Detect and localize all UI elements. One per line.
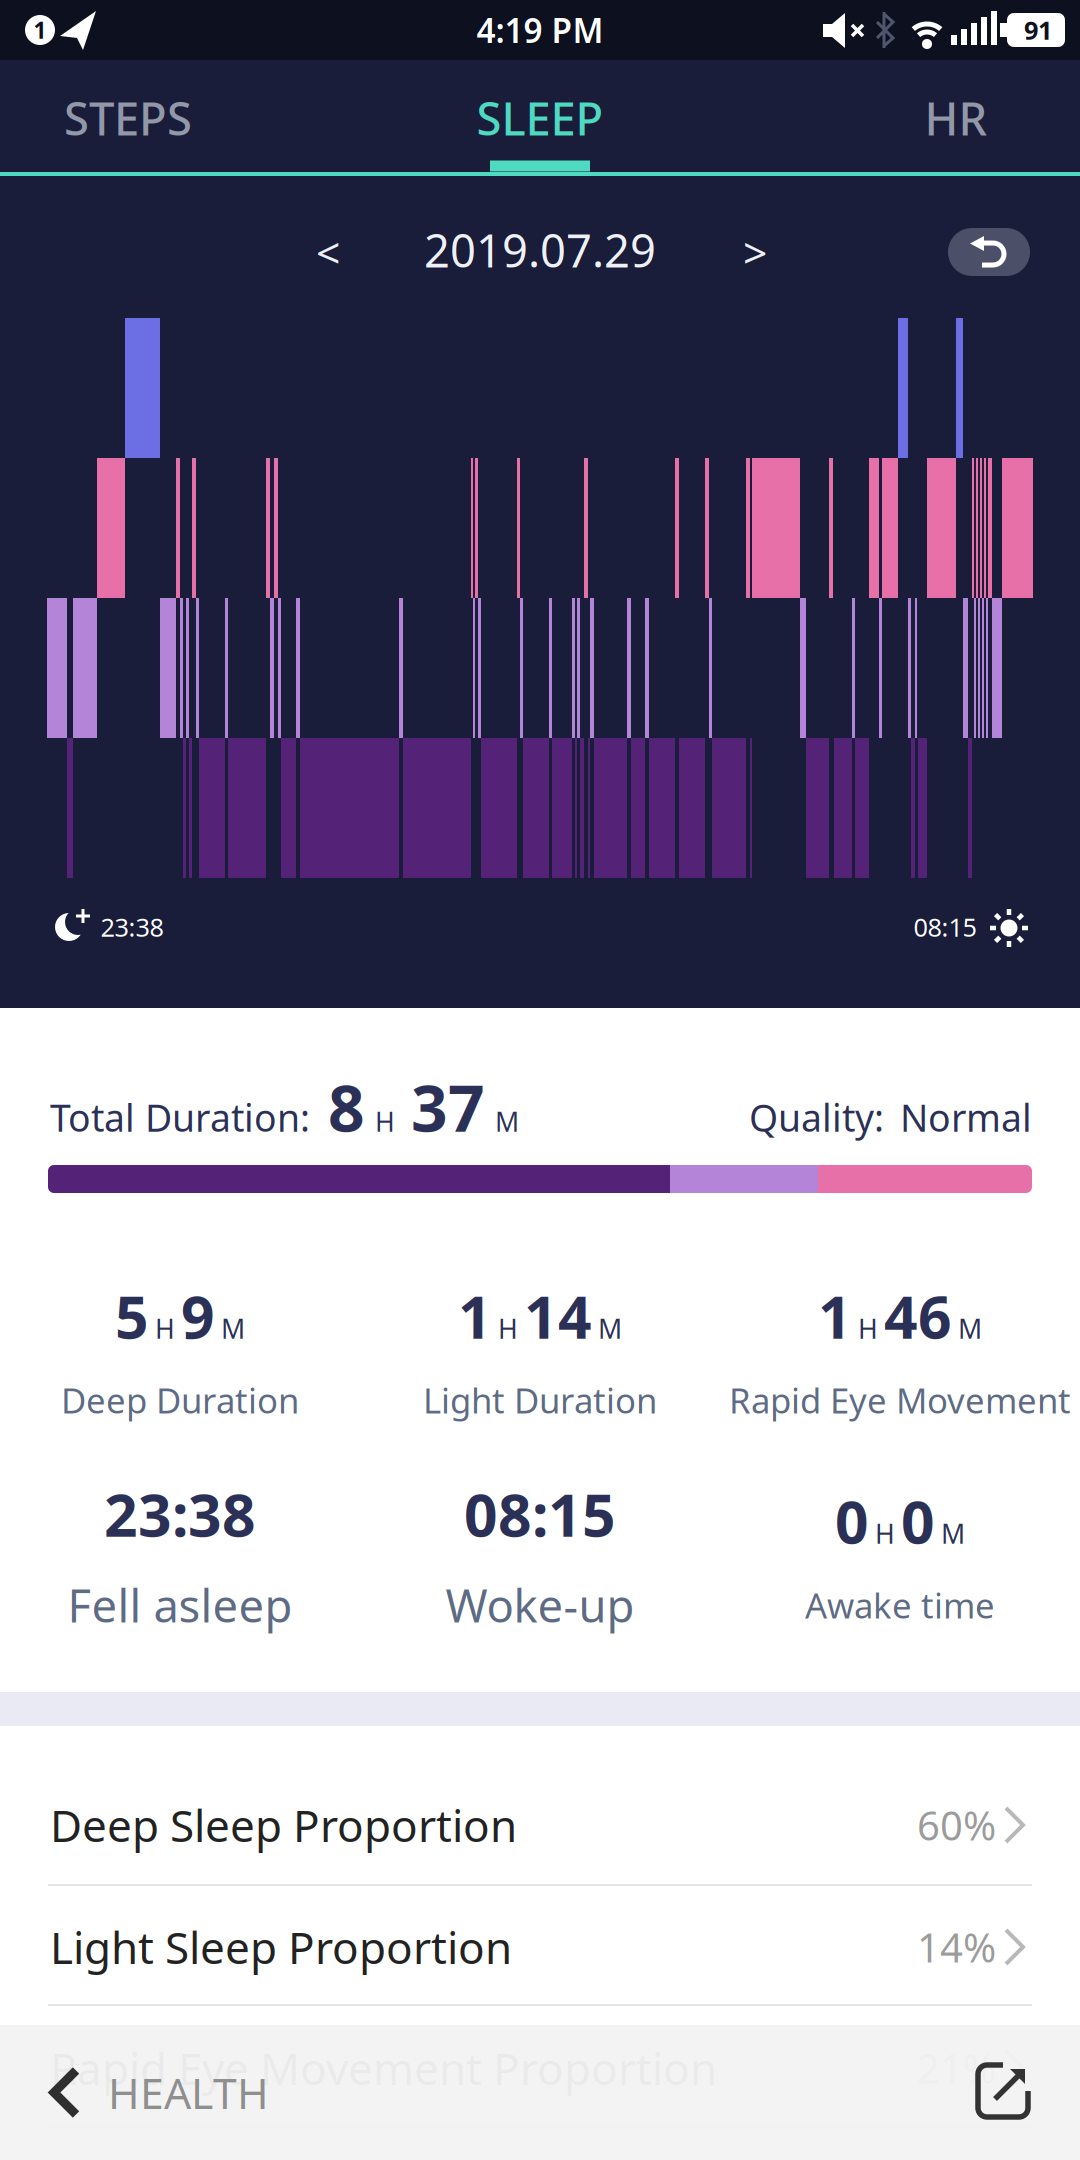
staticText: HR bbox=[924, 88, 987, 148]
staticText: 5 bbox=[115, 1277, 149, 1355]
staticText: Deep Duration bbox=[61, 1377, 299, 1423]
button[interactable]: Back to Health bbox=[0, 2025, 269, 2160]
staticText: Rapid Eye Movement Proportion bbox=[50, 2039, 717, 2097]
staticText: STEPS bbox=[64, 88, 192, 148]
staticText: 9 bbox=[181, 1277, 215, 1355]
staticText: Light Duration bbox=[423, 1377, 657, 1423]
staticText: H bbox=[858, 1311, 878, 1346]
staticText: 8 bbox=[328, 1064, 365, 1149]
staticText: 23:38 bbox=[104, 1475, 256, 1553]
staticText: 08:15 bbox=[913, 910, 976, 944]
staticText: H bbox=[875, 1516, 895, 1551]
staticText: M bbox=[958, 1311, 982, 1346]
staticText: Normal bbox=[900, 1093, 1032, 1142]
staticText: 46 bbox=[884, 1277, 952, 1355]
button[interactable]: SLEEP bbox=[430, 60, 650, 176]
staticText: < bbox=[316, 224, 340, 280]
button[interactable]: Deep Sleep Proportion bbox=[0, 1766, 1080, 1884]
staticText: 08:15 bbox=[464, 1475, 616, 1553]
staticText: SLEEP bbox=[476, 88, 603, 148]
staticText: Rapid Eye Movement bbox=[729, 1377, 1071, 1423]
staticText: 14 bbox=[524, 1277, 592, 1355]
staticText: M bbox=[221, 1311, 245, 1346]
staticText: Quality: bbox=[749, 1093, 884, 1142]
staticText: 1 bbox=[458, 1277, 492, 1355]
staticText: 4:19 PM bbox=[476, 8, 603, 52]
staticText: M bbox=[495, 1104, 519, 1139]
staticText: HEALTH bbox=[108, 2064, 269, 2121]
staticText: 0 bbox=[835, 1482, 869, 1560]
staticText: Fell asleep bbox=[67, 1575, 292, 1635]
button[interactable]: Light Sleep Proportion bbox=[0, 1888, 1080, 2006]
staticText: 1 bbox=[818, 1277, 852, 1355]
staticText: Deep Sleep Proportion bbox=[50, 1796, 517, 1854]
staticText: 37 bbox=[411, 1064, 485, 1149]
staticText: 2019.07.29 bbox=[424, 220, 656, 280]
staticText: 91 bbox=[1024, 13, 1052, 47]
button[interactable]: HR bbox=[856, 60, 1056, 176]
staticText: M bbox=[941, 1516, 965, 1551]
staticText: H bbox=[155, 1311, 175, 1346]
staticText: Awake time bbox=[805, 1582, 995, 1628]
staticText: Light Sleep Proportion bbox=[50, 1918, 512, 1976]
staticText: M bbox=[598, 1311, 622, 1346]
staticText: 14% bbox=[917, 1920, 996, 1973]
staticText: > bbox=[743, 224, 767, 280]
button[interactable]: Reset to today bbox=[948, 228, 1030, 276]
staticText: Total Duration: bbox=[50, 1093, 310, 1142]
staticText: H bbox=[375, 1104, 395, 1139]
staticText: Woke-up bbox=[445, 1575, 634, 1635]
button[interactable]: Previous day bbox=[288, 212, 368, 292]
button[interactable]: Next day bbox=[715, 212, 795, 292]
staticText: 0 bbox=[901, 1482, 935, 1560]
button[interactable]: Rapid Eye Movement Proportion bbox=[0, 2009, 1080, 2127]
staticText: 1 bbox=[33, 15, 46, 45]
staticText: 60% bbox=[917, 1798, 996, 1851]
button[interactable]: STEPS bbox=[18, 60, 238, 176]
staticText: H bbox=[498, 1311, 518, 1346]
staticText: 23:38 bbox=[100, 910, 163, 944]
staticText: 21% bbox=[917, 2041, 996, 2094]
button[interactable]: Share bbox=[975, 2063, 1031, 2119]
